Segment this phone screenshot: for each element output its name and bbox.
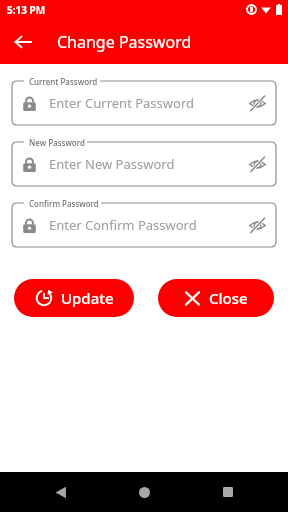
staticText: Enter Current Password (49, 94, 240, 112)
staticText: Change Password (57, 31, 192, 53)
button[interactable]: Recent apps (208, 472, 248, 512)
button[interactable]: Back (6, 25, 40, 59)
button[interactable]: Toggle password visibility (240, 86, 274, 120)
button[interactable]: Home (124, 472, 164, 512)
button[interactable]: Close (158, 279, 274, 317)
staticText: Current Password (29, 76, 98, 87)
staticText: Enter Confirm Password (49, 216, 240, 234)
button[interactable]: Toggle password visibility (240, 147, 274, 181)
button[interactable]: Back (40, 472, 80, 512)
button[interactable]: Toggle password visibility (240, 208, 274, 242)
staticText: Update (61, 288, 114, 308)
button[interactable]: Update (14, 279, 134, 317)
staticText: Confirm Password (29, 198, 99, 209)
staticText: New Password (29, 137, 85, 148)
staticText: Enter New Password (49, 155, 240, 173)
button[interactable]: Enter Confirm Password (12, 203, 276, 247)
button[interactable]: Enter New Password (12, 142, 276, 186)
button[interactable]: Enter Current Password (12, 81, 276, 125)
staticText: Close (209, 288, 248, 308)
staticText: 5:13 PM (7, 3, 46, 17)
